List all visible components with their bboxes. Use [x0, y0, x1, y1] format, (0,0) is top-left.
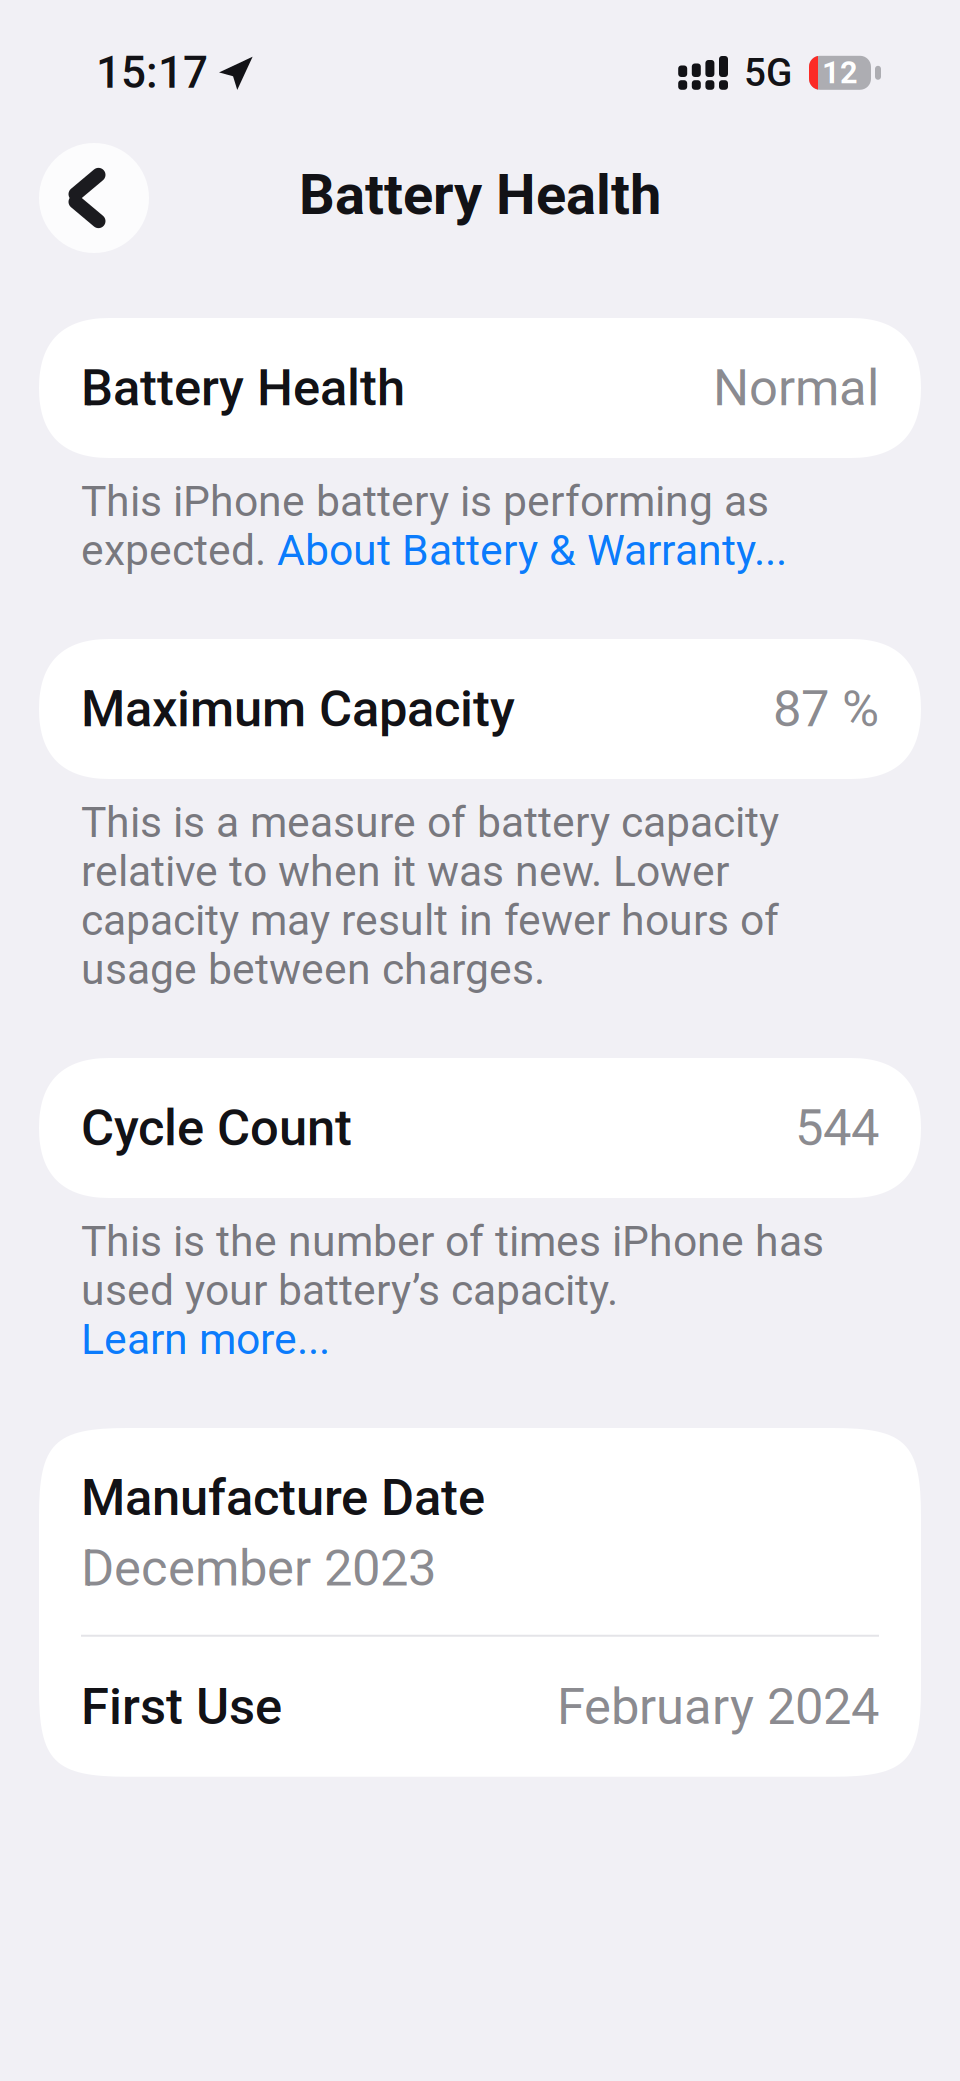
- staticText: 87 %: [773, 679, 879, 739]
- button[interactable]: Back: [39, 143, 149, 253]
- staticText: Battery Health: [81, 358, 405, 418]
- button[interactable]: Maximum Capacity: [39, 639, 921, 779]
- staticText: First Use: [81, 1677, 282, 1736]
- staticText: Battery Health: [299, 162, 661, 228]
- staticText: relative to when it was new. Lower: [81, 846, 729, 896]
- staticText: usage between charges.: [81, 944, 545, 994]
- staticText: December 2023: [81, 1538, 436, 1598]
- staticText: Maximum Capacity: [81, 679, 515, 739]
- staticText: Learn more...: [81, 1314, 330, 1364]
- staticText: capacity may result in fewer hours of: [81, 895, 779, 945]
- staticText: 12: [822, 55, 858, 91]
- staticText: 544: [795, 1098, 879, 1158]
- staticText: expected.: [81, 525, 277, 575]
- button[interactable]: Cycle Count: [39, 1058, 921, 1198]
- staticText: Cycle Count: [81, 1098, 352, 1158]
- staticText: 15:17: [96, 47, 208, 99]
- staticText: 5G: [744, 50, 792, 95]
- button[interactable]: First Use: [39, 1637, 921, 1777]
- staticText: February 2024: [557, 1677, 879, 1736]
- button[interactable]: Battery Health: [39, 318, 921, 458]
- staticText: Manufacture Date: [81, 1468, 485, 1527]
- staticText: About Battery & Warranty...: [277, 525, 787, 575]
- staticText: This is the number of times iPhone has: [81, 1216, 824, 1266]
- staticText: This is a measure of battery capacity: [81, 797, 779, 847]
- staticText: This iPhone battery is performing as: [81, 476, 769, 526]
- staticText: used your battery’s capacity.: [81, 1265, 618, 1315]
- staticText: Normal: [713, 358, 879, 418]
